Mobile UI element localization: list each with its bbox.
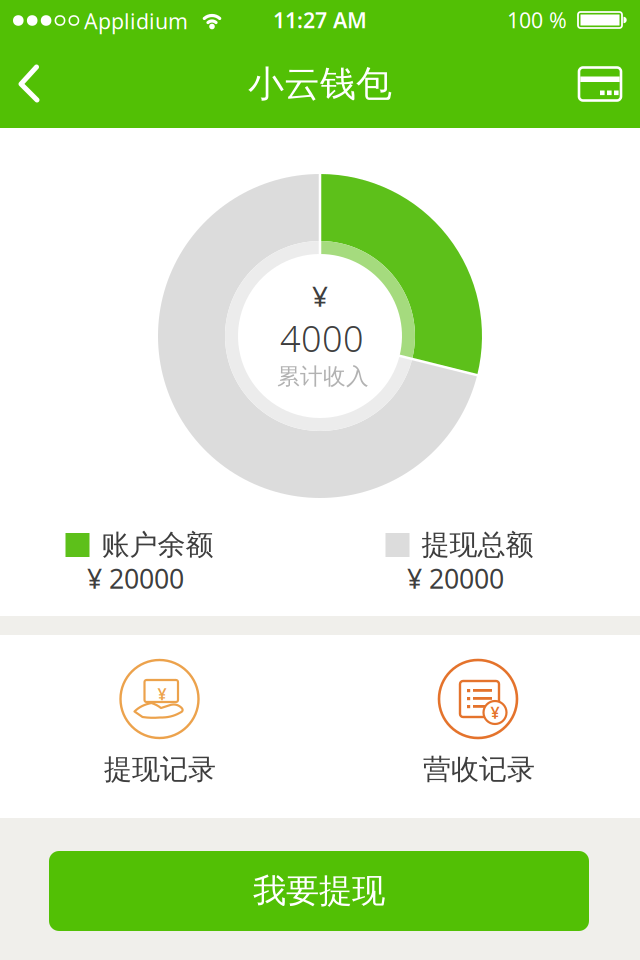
button[interactable] [569,59,631,109]
staticText: 账户余额 [101,528,213,562]
staticText: 提现总额 [421,528,533,562]
button[interactable]: ¥ [320,635,640,818]
staticText: 累计收入 [277,363,369,390]
staticText: ¥ 20000 [87,561,184,596]
button[interactable] [0,56,64,112]
button[interactable]: ¥ [0,635,320,818]
staticText: 营收记录 [423,752,535,787]
staticText: ¥ [157,683,166,705]
staticText: 我要提现 [253,870,385,911]
staticText: 100 % [507,6,567,34]
staticText: 11:27 AM [273,6,367,34]
button[interactable]: 我要提现 [49,851,589,931]
staticText: ¥ [312,277,328,315]
staticText: 小云钱包 [248,62,392,106]
staticText: Applidium [84,7,188,35]
staticText: 4000 [280,314,364,362]
staticText: ¥ [490,702,499,723]
staticText: 提现记录 [104,752,216,787]
staticText: ¥ 20000 [407,561,504,596]
